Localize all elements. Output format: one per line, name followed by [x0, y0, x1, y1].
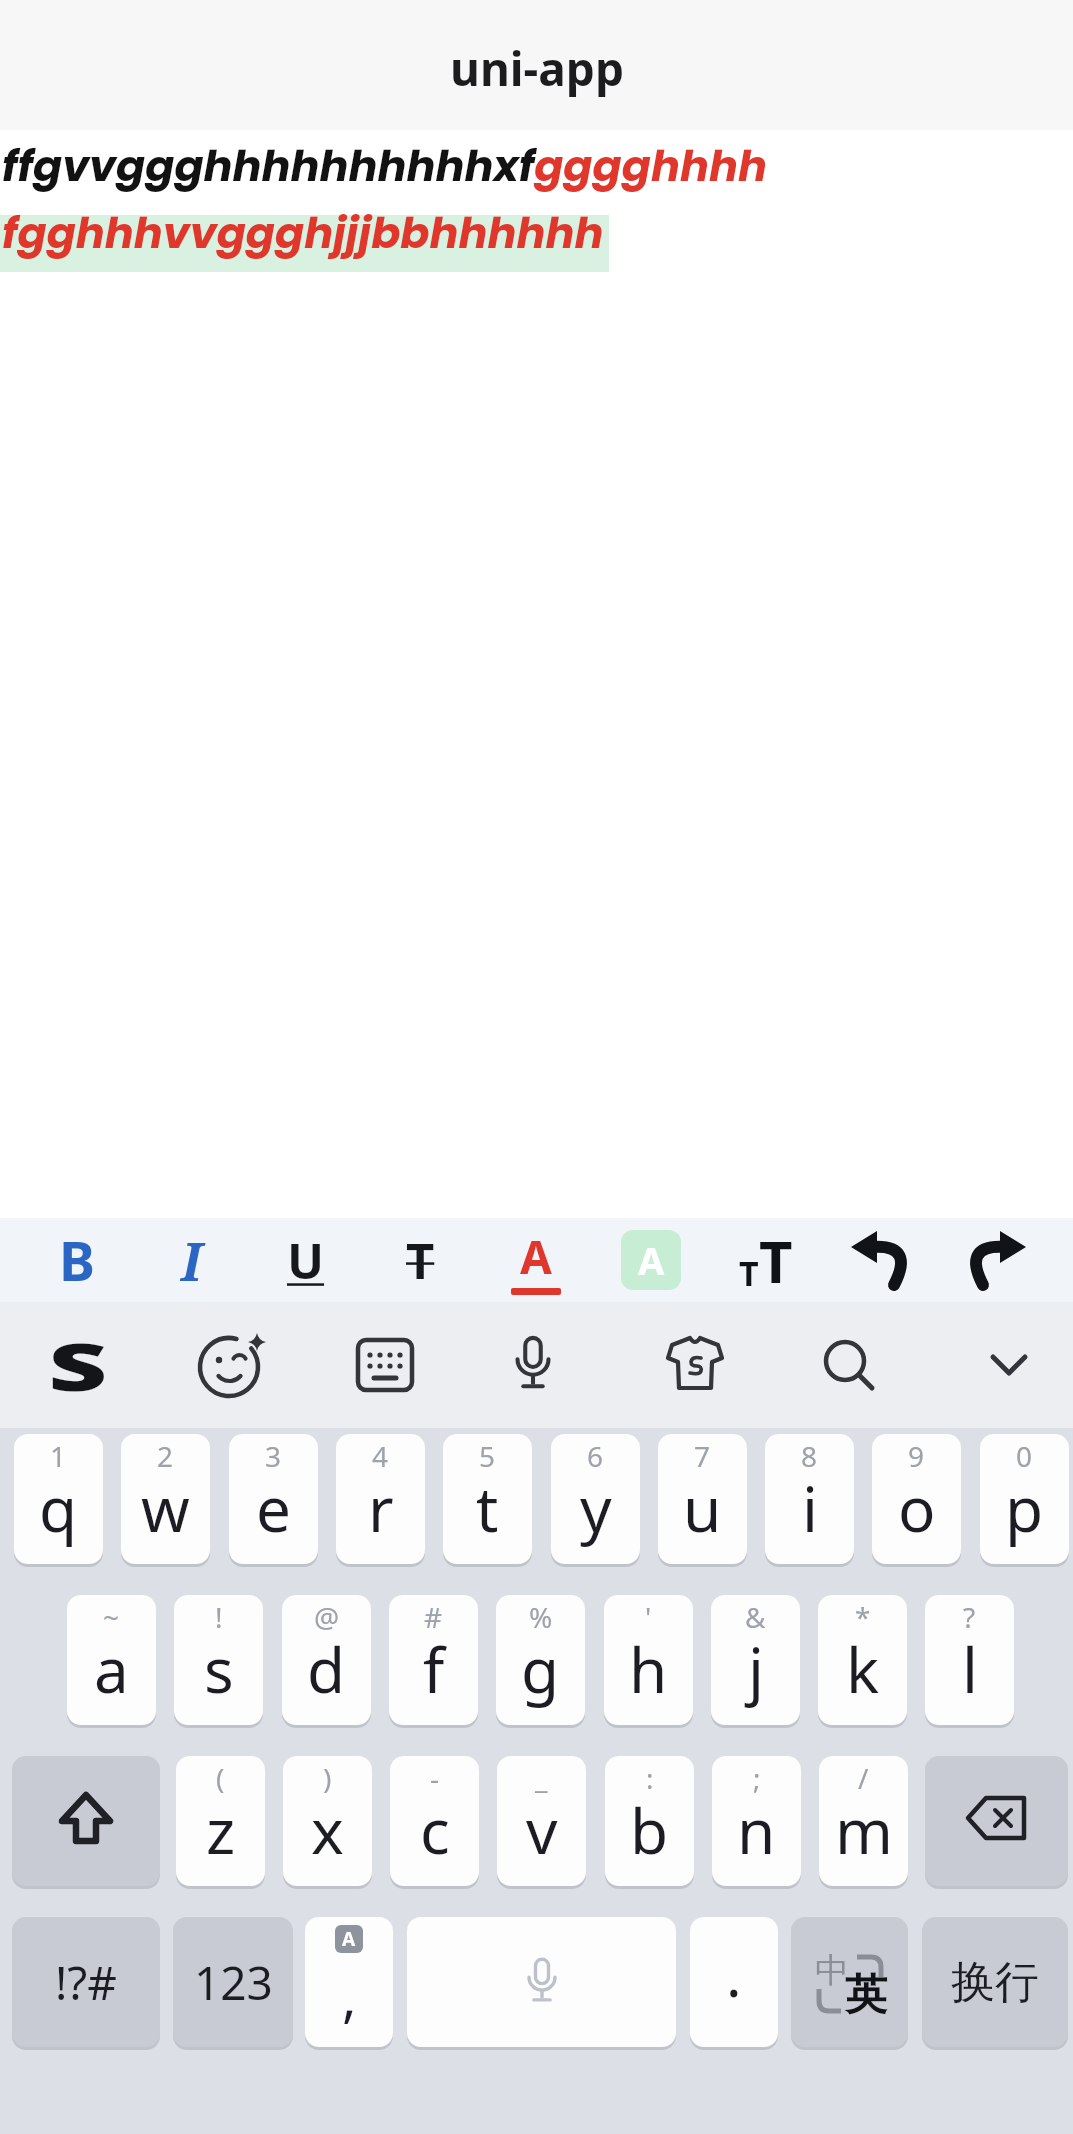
button[interactable]: 9: [872, 1434, 961, 1564]
button[interactable]: &: [711, 1595, 800, 1725]
button[interactable]: [177, 1302, 287, 1428]
staticText: B: [59, 1223, 95, 1297]
staticText: T: [406, 1227, 435, 1294]
button[interactable]: ?: [925, 1595, 1014, 1725]
button[interactable]: (: [176, 1756, 265, 1886]
button[interactable]: ): [283, 1756, 372, 1886]
button[interactable]: %: [496, 1595, 585, 1725]
staticText: uni-app: [450, 37, 624, 100]
button[interactable]: I: [134, 1218, 248, 1302]
button[interactable]: [640, 1302, 750, 1428]
staticText: y: [580, 1466, 612, 1550]
button[interactable]: ;: [712, 1756, 801, 1886]
button[interactable]: [823, 1218, 938, 1302]
staticText: b: [630, 1788, 669, 1872]
button[interactable]: 中: [791, 1917, 908, 2047]
button[interactable]: 6: [551, 1434, 640, 1564]
staticText: :: [646, 1759, 654, 1797]
staticText: x: [311, 1788, 344, 1872]
staticText: q: [39, 1466, 78, 1550]
button[interactable]: [925, 1756, 1068, 1886]
staticText: A: [638, 1234, 665, 1286]
button[interactable]: T: [708, 1218, 823, 1302]
button[interactable]: #: [389, 1595, 478, 1725]
button[interactable]: !: [174, 1595, 263, 1725]
button[interactable]: 1: [14, 1434, 103, 1564]
button[interactable]: [407, 1917, 676, 2047]
button[interactable]: A: [478, 1218, 593, 1302]
button[interactable]: -: [390, 1756, 479, 1886]
staticText: 2: [157, 1437, 174, 1475]
staticText: 9: [908, 1437, 925, 1475]
button[interactable]: /: [819, 1756, 908, 1886]
button[interactable]: 2: [121, 1434, 210, 1564]
button[interactable]: [954, 1302, 1064, 1428]
button[interactable]: [478, 1302, 588, 1428]
staticText: @: [314, 1598, 340, 1636]
button[interactable]: [330, 1302, 440, 1428]
staticText: f: [423, 1627, 445, 1711]
staticText: #: [424, 1598, 443, 1636]
button[interactable]: ': [604, 1595, 693, 1725]
button[interactable]: A: [305, 1917, 393, 2047]
staticText: d: [307, 1627, 346, 1711]
staticText: n: [737, 1788, 776, 1872]
button[interactable]: 3: [229, 1434, 318, 1564]
staticText: A: [520, 1225, 552, 1288]
staticText: k: [846, 1627, 880, 1711]
staticText: r: [368, 1466, 394, 1550]
staticText: T: [739, 1250, 759, 1296]
button[interactable]: :: [605, 1756, 694, 1886]
staticText: o: [898, 1466, 936, 1550]
staticText: *: [855, 1598, 871, 1636]
staticText: /: [858, 1759, 869, 1797]
button[interactable]: S: [23, 1302, 133, 1428]
staticText: 7: [694, 1437, 711, 1475]
button[interactable]: !?#: [12, 1917, 160, 2047]
staticText: 6: [587, 1437, 604, 1475]
staticText: !: [215, 1598, 223, 1636]
staticText: 英: [845, 1969, 887, 2022]
button[interactable]: U: [248, 1218, 363, 1302]
button[interactable]: _: [497, 1756, 586, 1886]
staticText: ;: [753, 1759, 761, 1797]
button[interactable]: *: [818, 1595, 907, 1725]
button[interactable]: [794, 1302, 904, 1428]
staticText: ): [323, 1759, 332, 1797]
button[interactable]: @: [282, 1595, 371, 1725]
staticText: A: [342, 1926, 356, 1952]
staticText: 4: [372, 1437, 389, 1475]
button[interactable]: 4: [336, 1434, 425, 1564]
staticText: i: [802, 1466, 818, 1550]
staticText: ,: [342, 1959, 357, 2033]
staticText: p: [1005, 1466, 1044, 1550]
staticText: ffgvvggghhhhhhhhhhxfgggghhhh fgghhhvvggg…: [2, 136, 767, 263]
button[interactable]: 123: [173, 1917, 293, 2047]
staticText: m: [835, 1788, 893, 1872]
button[interactable]: [12, 1756, 160, 1886]
button[interactable]: [938, 1218, 1053, 1302]
button[interactable]: 5: [443, 1434, 532, 1564]
staticText: 123: [194, 1951, 273, 2014]
staticText: z: [206, 1788, 236, 1872]
button[interactable]: 0: [980, 1434, 1069, 1564]
staticText: s: [204, 1627, 234, 1711]
button[interactable]: 7: [658, 1434, 747, 1564]
staticText: &: [745, 1598, 766, 1636]
button[interactable]: 换行: [922, 1917, 1068, 2047]
staticText: S: [48, 1320, 109, 1410]
staticText: (: [216, 1759, 225, 1797]
button[interactable]: B: [20, 1218, 134, 1302]
staticText: -: [430, 1759, 440, 1797]
staticText: g: [521, 1627, 560, 1711]
button[interactable]: 8: [765, 1434, 854, 1564]
staticText: t: [476, 1466, 499, 1550]
button[interactable]: ~: [67, 1595, 156, 1725]
button[interactable]: A: [593, 1218, 708, 1302]
staticText: _: [535, 1759, 548, 1797]
button[interactable]: T: [363, 1218, 478, 1302]
staticText: .: [726, 1935, 742, 2014]
button[interactable]: .: [690, 1917, 778, 2047]
staticText: ~: [103, 1598, 120, 1636]
staticText: 0: [1016, 1437, 1033, 1475]
